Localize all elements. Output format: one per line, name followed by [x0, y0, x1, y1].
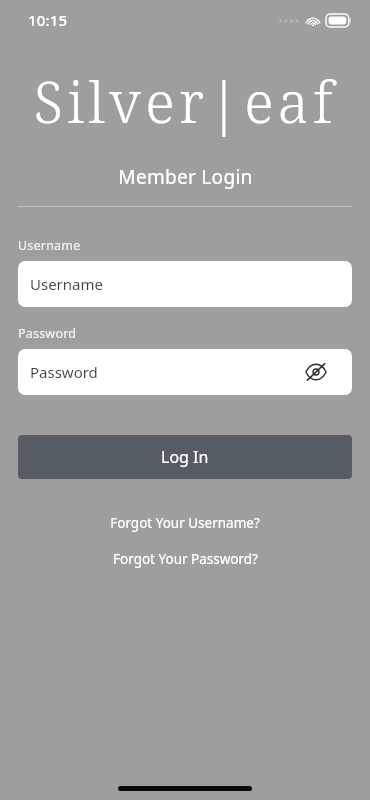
staticText: Log In — [161, 446, 209, 468]
button[interactable]: Forgot Your Password? — [105, 548, 266, 570]
staticText: 10:15 — [28, 10, 68, 30]
staticText: Forgot Your Username? — [110, 514, 260, 532]
staticText: Member Login — [118, 164, 253, 190]
staticText: Password — [30, 362, 98, 382]
staticText: Username — [18, 237, 81, 254]
staticText: Password — [18, 325, 77, 342]
button[interactable]: Show password — [303, 359, 329, 385]
button[interactable]: Username — [18, 261, 352, 307]
button[interactable]: Log In — [18, 435, 352, 479]
staticText: Silver|eaf — [33, 62, 337, 138]
staticText: Forgot Your Password? — [113, 550, 258, 568]
button[interactable]: Password — [18, 349, 352, 395]
button[interactable]: Forgot Your Username? — [102, 512, 268, 534]
staticText: Username — [30, 274, 103, 294]
